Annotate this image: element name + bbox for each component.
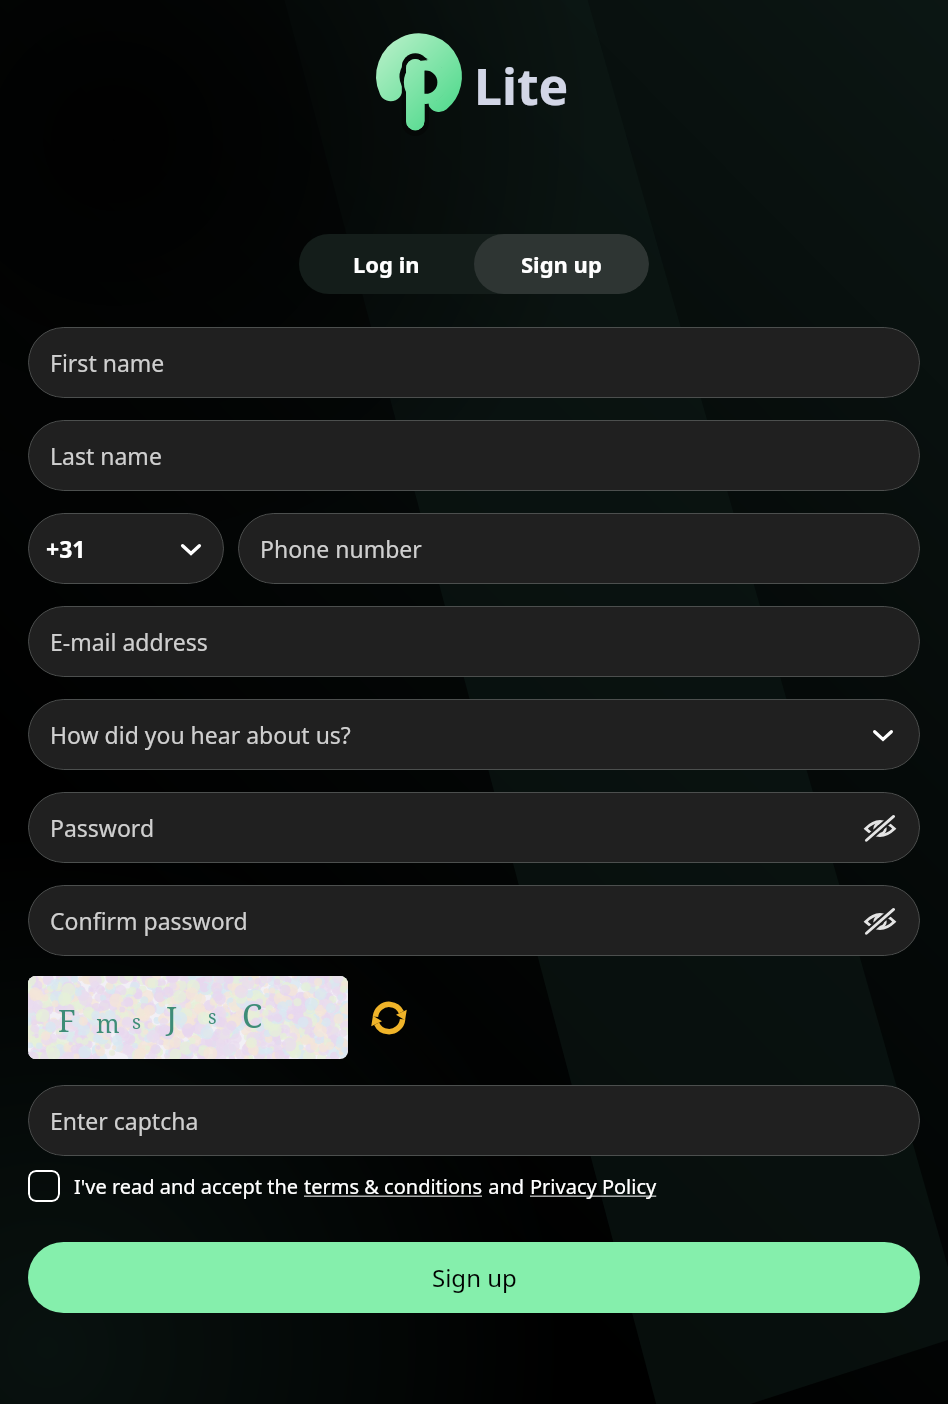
- staticText: Password: [50, 812, 155, 843]
- staticText: F: [58, 1000, 76, 1041]
- staticText: +31: [46, 533, 86, 564]
- staticText: I've read and accept the: [74, 1173, 304, 1200]
- button[interactable]: +31: [28, 513, 224, 584]
- button[interactable]: How did you hear about us?: [28, 699, 920, 770]
- button[interactable]: Password: [28, 792, 920, 863]
- staticText: C: [242, 993, 263, 1038]
- staticText: E-mail address: [50, 626, 208, 657]
- button[interactable]: Sign up: [474, 234, 649, 294]
- staticText: Log in: [353, 249, 420, 279]
- staticText: How did you hear about us?: [50, 719, 351, 750]
- button[interactable]: Phone number: [238, 513, 920, 584]
- staticText: and: [483, 1173, 530, 1200]
- staticText: First name: [50, 347, 165, 378]
- button[interactable]: Enter captcha: [28, 1085, 920, 1156]
- button[interactable]: terms & conditions: [304, 1173, 483, 1200]
- button[interactable]: First name: [28, 327, 920, 398]
- staticText: Last name: [50, 440, 162, 471]
- staticText: Confirm password: [50, 905, 248, 936]
- button[interactable]: E-mail address: [28, 606, 920, 677]
- staticText: Enter captcha: [50, 1105, 199, 1136]
- button[interactable]: Show password: [858, 899, 902, 943]
- button[interactable]: Confirm password: [28, 885, 920, 956]
- button[interactable]: Privacy Policy: [530, 1173, 657, 1200]
- staticText: Lite: [474, 52, 569, 120]
- staticText: Phone number: [260, 533, 422, 564]
- staticText: J: [166, 996, 178, 1038]
- button[interactable]: Refresh captcha: [362, 991, 416, 1045]
- staticText: m: [96, 1006, 120, 1040]
- staticText: Sign up: [521, 249, 602, 279]
- button[interactable]: Log in: [299, 234, 474, 294]
- staticText: s: [208, 1004, 217, 1030]
- button[interactable]: Accept terms checkbox: [28, 1170, 60, 1202]
- staticText: s: [132, 1008, 142, 1035]
- button[interactable]: Show password: [858, 806, 902, 850]
- button[interactable]: Sign up: [28, 1242, 920, 1313]
- button[interactable]: Last name: [28, 420, 920, 491]
- button[interactable]: Accept terms checkbox: [28, 1170, 920, 1202]
- staticText: Sign up: [432, 1261, 517, 1294]
